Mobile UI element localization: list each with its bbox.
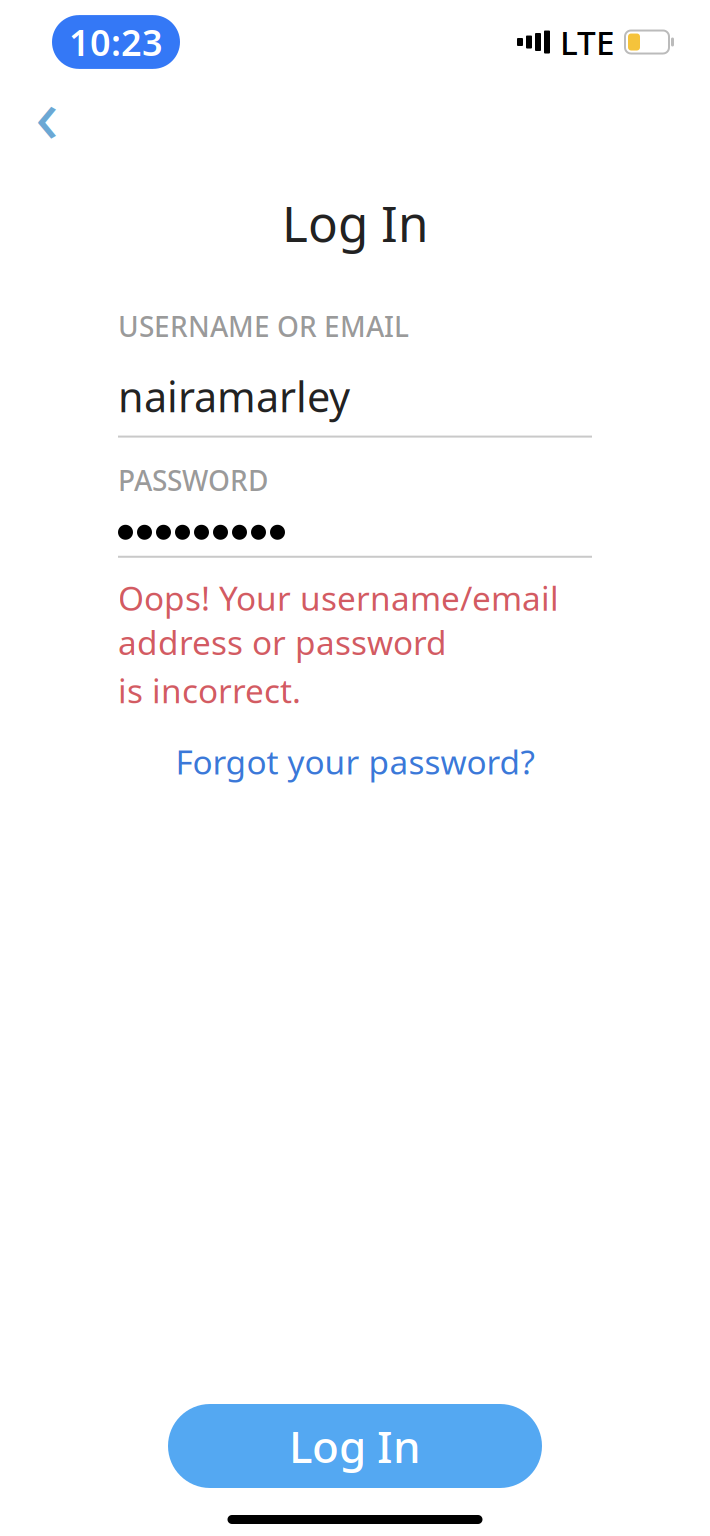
staticText: 10:23 <box>69 18 163 66</box>
staticText: Oops! Your username/email address or pas… <box>118 576 559 664</box>
staticText: ‹ <box>35 62 59 164</box>
staticText: is incorrect. <box>118 668 301 713</box>
staticText: nairamarley <box>118 369 350 424</box>
button[interactable]: Forgot your password? <box>118 735 592 789</box>
staticText: USERNAME OR EMAIL <box>118 307 409 345</box>
staticText: PASSWORD <box>118 462 268 499</box>
button[interactable]: Log In <box>168 1404 542 1488</box>
button[interactable]: Back <box>14 80 80 146</box>
staticText: Forgot your password? <box>175 739 534 784</box>
staticText: Log In <box>289 1417 421 1475</box>
staticText: Log In <box>282 190 428 255</box>
staticText: LTE <box>560 20 615 64</box>
